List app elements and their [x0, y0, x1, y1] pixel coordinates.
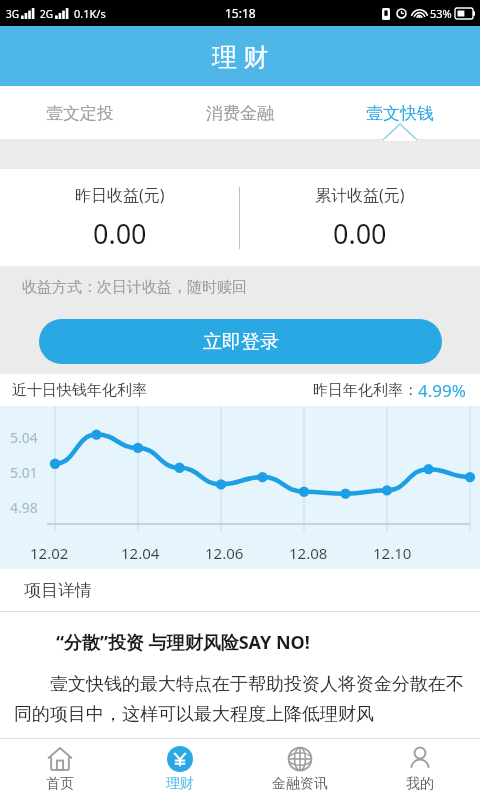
staticText: 5.04 — [10, 428, 38, 447]
staticText: “分散”投资 与理财风险SAY NO! — [56, 630, 310, 655]
button[interactable]: 壹文定投 — [0, 86, 160, 141]
staticText: 0.1K/s — [74, 6, 106, 21]
staticText: 理 财 — [212, 39, 269, 73]
staticText: 4.98 — [10, 498, 38, 517]
staticText: 立即登录 — [203, 330, 279, 354]
button[interactable]: 立即登录 — [39, 319, 442, 364]
staticText: 我的 — [406, 775, 434, 793]
button[interactable]: 我的 — [360, 738, 480, 800]
staticText: 53% — [430, 6, 452, 21]
button[interactable]: 壹文快钱 — [320, 86, 480, 141]
other: 理财 — [167, 746, 193, 772]
staticText: 近十日快钱年化利率 — [12, 381, 147, 400]
button[interactable]: 消费金融 — [160, 86, 320, 141]
staticText: 0.00 — [333, 215, 387, 252]
staticText: 12.02 — [30, 543, 69, 563]
staticText: 12.10 — [373, 543, 412, 563]
staticText: 壹文定投 — [46, 103, 114, 124]
staticText: 15:18 — [225, 5, 256, 21]
staticText: 5.01 — [10, 463, 38, 482]
staticText: 收益方式：次日计收益，随时赎回 — [22, 278, 247, 297]
other: 金融资讯 — [287, 746, 313, 772]
staticText: 项目详情 — [24, 580, 92, 601]
other: 首页 — [47, 746, 73, 772]
staticText: 昨日收益(元) — [75, 184, 165, 206]
button[interactable]: 理财 — [120, 738, 240, 800]
staticText: 4.99% — [418, 379, 466, 402]
button[interactable]: 首页 — [0, 738, 120, 800]
staticText: 2G — [40, 7, 53, 21]
staticText: 12.08 — [289, 543, 328, 563]
staticText: 12.06 — [205, 543, 244, 563]
other: 我的 — [407, 746, 433, 772]
staticText: 首页 — [46, 775, 74, 793]
staticText: 3G — [6, 7, 19, 21]
staticText: 累计收益(元) — [315, 184, 405, 206]
button[interactable]: 金融资讯 — [240, 738, 360, 800]
staticText: 壹文快钱 — [366, 103, 434, 124]
staticText: 0.00 — [93, 215, 147, 252]
staticText: 昨日年化利率： — [313, 381, 418, 400]
staticText: 壹文快钱的最大特点在于帮助投资人将资金分散在不同的项目中，这样可以最大程度上降低… — [14, 671, 466, 725]
staticText: 12.04 — [121, 543, 160, 563]
staticText: 消费金融 — [206, 103, 274, 124]
staticText: 金融资讯 — [272, 775, 328, 793]
staticText: 理财 — [166, 775, 194, 793]
